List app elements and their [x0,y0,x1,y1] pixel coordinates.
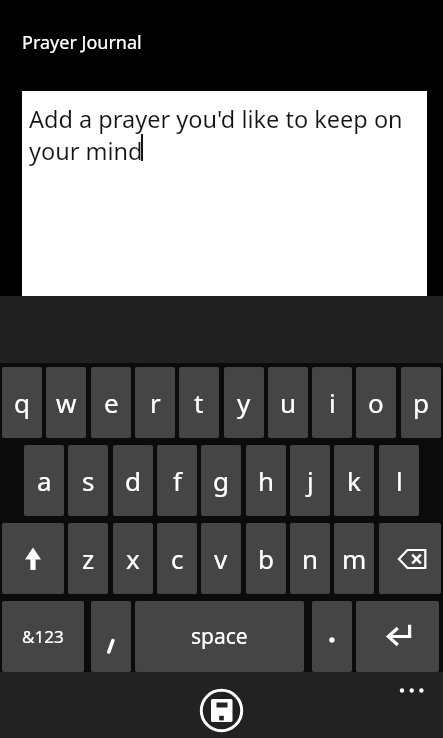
staticText: Prayer Journal [22,30,142,55]
staticText: b [258,541,274,576]
button[interactable]: j [290,445,330,516]
staticText: k [347,463,361,498]
button[interactable] [379,523,441,594]
staticText: t [194,385,204,420]
staticText: &123 [22,625,64,648]
staticText: i [329,385,336,420]
button[interactable]: t [179,367,219,438]
button[interactable] [199,688,244,733]
button[interactable]: z [68,523,108,594]
button[interactable]: v [201,523,241,594]
staticText: h [258,463,275,498]
button[interactable]: f [157,445,197,516]
button[interactable]: b [246,523,286,594]
button[interactable] [356,601,439,672]
button[interactable]: m [334,523,374,594]
staticText: z [82,541,95,576]
button[interactable]: w [46,367,86,438]
staticText: y [237,385,251,420]
staticText: o [368,385,384,420]
staticText: x [126,541,140,576]
button[interactable]: d [113,445,153,516]
button[interactable] [312,601,352,672]
staticText: l [396,463,403,498]
button[interactable]: e [91,367,131,438]
button[interactable]: &123 [2,601,84,672]
button[interactable]: k [334,445,374,516]
staticText: n [302,541,319,576]
staticText: w [56,385,77,420]
staticText: r [150,385,161,420]
button[interactable]: s [68,445,108,516]
staticText: f [173,463,182,498]
staticText: Add a prayer you'd like to keep on your … [29,103,403,167]
staticText: m [342,541,367,576]
button[interactable] [91,601,131,672]
staticText: e [104,385,119,420]
button[interactable]: o [356,367,396,438]
button[interactable]: i [312,367,352,438]
staticText: u [280,385,297,420]
staticText: j [307,463,314,498]
button[interactable]: q [2,367,42,438]
staticText: s [82,463,95,498]
button[interactable]: c [157,523,197,594]
button[interactable]: u [268,367,308,438]
staticText: p [413,385,429,420]
staticText: q [14,385,30,420]
staticText: c [171,541,184,576]
staticText: a [37,463,52,498]
button[interactable]: x [113,523,153,594]
staticText: v [214,541,228,576]
staticText: g [213,463,229,498]
button[interactable]: Add a prayer you'd like to keep on your … [22,91,427,296]
button[interactable]: y [224,367,264,438]
button[interactable]: l [379,445,419,516]
button[interactable]: h [246,445,286,516]
button[interactable] [2,523,64,594]
button[interactable]: p [401,367,441,438]
staticText: space [191,622,248,651]
button[interactable]: g [201,445,241,516]
button[interactable] [392,678,432,704]
button[interactable]: space [135,601,304,672]
staticText: d [125,463,141,498]
button[interactable]: n [290,523,330,594]
button[interactable]: a [24,445,64,516]
button[interactable]: r [135,367,175,438]
